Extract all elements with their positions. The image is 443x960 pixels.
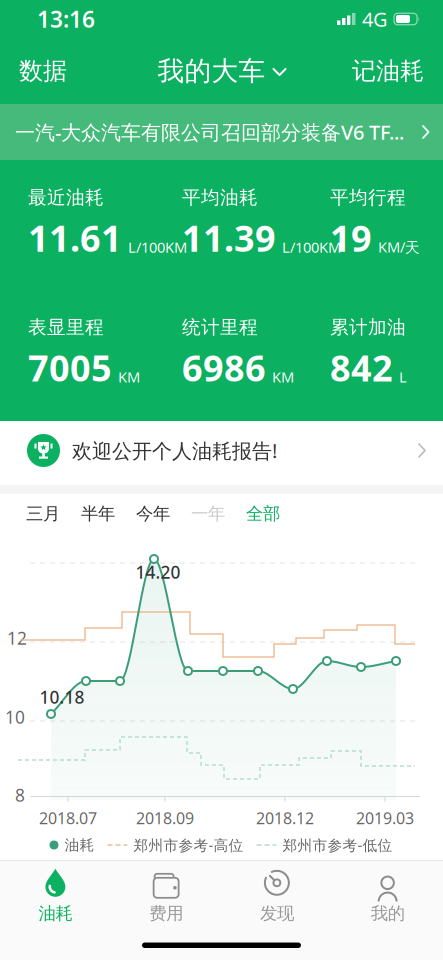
staticText: 14.20 <box>135 560 180 583</box>
staticText: 10 <box>5 705 25 728</box>
staticText: 2019.03 <box>356 807 414 829</box>
staticText: 一汽-大众汽车有限公司召回部分装备V6 TF... <box>15 119 404 145</box>
staticText: 最近油耗 <box>28 186 104 209</box>
staticText: L <box>399 367 407 386</box>
button[interactable]: 发现 <box>221 868 332 924</box>
button[interactable]: 三月 <box>26 503 60 524</box>
button[interactable]: 我的大车 <box>157 55 285 87</box>
staticText: 油耗 <box>38 903 72 924</box>
staticText: L/100KM <box>282 237 341 257</box>
button[interactable]: 油耗 <box>0 868 111 924</box>
staticText: 数据 <box>19 56 67 86</box>
staticText: KM <box>272 367 294 386</box>
staticText: 一年 <box>191 503 225 524</box>
staticText: 我的大车 <box>157 55 265 87</box>
staticText: 今年 <box>136 503 170 524</box>
staticText: 我的 <box>371 903 405 924</box>
staticText: 欢迎公开个人油耗报告! <box>72 437 277 464</box>
staticText: 2018.07 <box>39 807 97 829</box>
button[interactable]: 费用 <box>111 868 222 924</box>
button[interactable]: 一年 <box>191 503 225 524</box>
staticText: 郑州市参考-高位 <box>133 835 243 855</box>
staticText: 表显里程 <box>28 316 104 339</box>
staticText: 842 <box>330 344 393 391</box>
staticText: 11.61 <box>28 214 122 262</box>
staticText: KM/天 <box>378 237 420 257</box>
staticText: KM <box>118 367 140 386</box>
staticText: 半年 <box>81 503 115 524</box>
staticText: 2018.09 <box>136 807 194 829</box>
staticText: 12 <box>7 626 27 649</box>
staticText: L/100KM <box>128 237 187 257</box>
staticText: 费用 <box>149 903 183 924</box>
staticText: 记油耗 <box>352 56 424 86</box>
staticText: 发现 <box>260 903 294 924</box>
staticText: 4G <box>362 6 388 32</box>
staticText: 平均行程 <box>330 186 406 209</box>
staticText: 全部 <box>246 503 280 524</box>
staticText: 郑州市参考-低位 <box>282 835 392 855</box>
staticText: 油耗 <box>64 836 94 854</box>
button[interactable]: 记油耗 <box>352 56 424 86</box>
button[interactable]: 半年 <box>81 503 115 524</box>
button[interactable]: 我的 <box>332 868 443 924</box>
staticText: 累计加油 <box>330 316 406 339</box>
staticText: 2018.12 <box>256 807 314 829</box>
staticText: 7005 <box>28 344 112 391</box>
staticText: 13:16 <box>37 4 95 34</box>
staticText: 19 <box>330 214 372 262</box>
button[interactable]: 今年 <box>136 503 170 524</box>
staticText: 统计里程 <box>182 316 258 339</box>
button[interactable]: 数据 <box>19 56 67 86</box>
staticText: 11.39 <box>182 214 276 262</box>
button[interactable]: 欢迎公开个人油耗报告! <box>0 421 443 485</box>
staticText: 平均油耗 <box>182 186 258 209</box>
staticText: 三月 <box>26 503 60 524</box>
staticText: 8 <box>15 783 25 806</box>
staticText: 10.18 <box>39 685 84 708</box>
button[interactable]: 一汽-大众汽车有限公司召回部分装备V6 TF... <box>0 104 443 160</box>
staticText: 6986 <box>182 344 266 391</box>
button[interactable]: 全部 <box>246 503 280 524</box>
